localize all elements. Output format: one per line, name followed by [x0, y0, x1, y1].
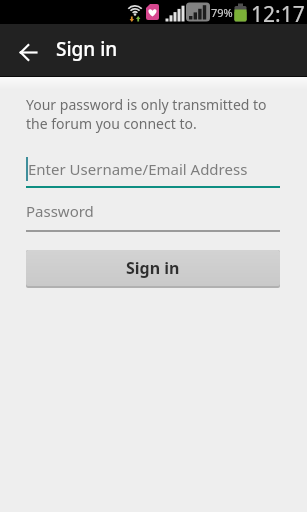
button[interactable]: Password	[26, 201, 280, 232]
button[interactable]: Sign in	[26, 250, 280, 286]
button[interactable]	[0, 24, 52, 76]
staticText: 12:17	[251, 0, 305, 24]
staticText: Enter Username/Email Address	[28, 159, 248, 179]
staticText: Sign in	[126, 257, 180, 279]
button[interactable]: Enter Username/Email Address	[26, 157, 280, 188]
staticText: Password	[26, 201, 94, 219]
staticText: Sign in	[56, 36, 118, 62]
staticText: Your password is only transmitted to the…	[26, 95, 267, 133]
staticText: 79%	[211, 5, 233, 20]
